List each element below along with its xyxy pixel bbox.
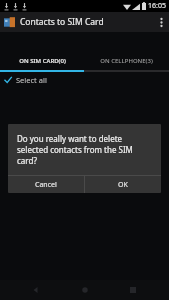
staticText: 16:05 [148,1,166,11]
staticText: Select all [16,75,47,85]
staticText: Do you really want to delete selected co… [17,133,152,166]
staticText: Contacts to SIM Card [20,16,104,28]
button[interactable]: More options [153,12,169,32]
button[interactable]: Select all [0,72,169,88]
staticText: Cancel [35,180,57,190]
button[interactable]: Cancel [8,176,84,193]
staticText: ON CELLPHONE(3) [100,57,153,65]
button[interactable]: Back [24,280,48,300]
button[interactable]: OK [85,176,161,193]
staticText: ON SIM CARD(0) [19,57,66,65]
button[interactable]: Recent apps [121,280,145,300]
staticText: OK [118,180,128,190]
button[interactable]: ON CELLPHONE(3) [84,52,169,70]
button[interactable]: Home [73,280,97,300]
button[interactable]: ON SIM CARD(0) [0,52,84,70]
